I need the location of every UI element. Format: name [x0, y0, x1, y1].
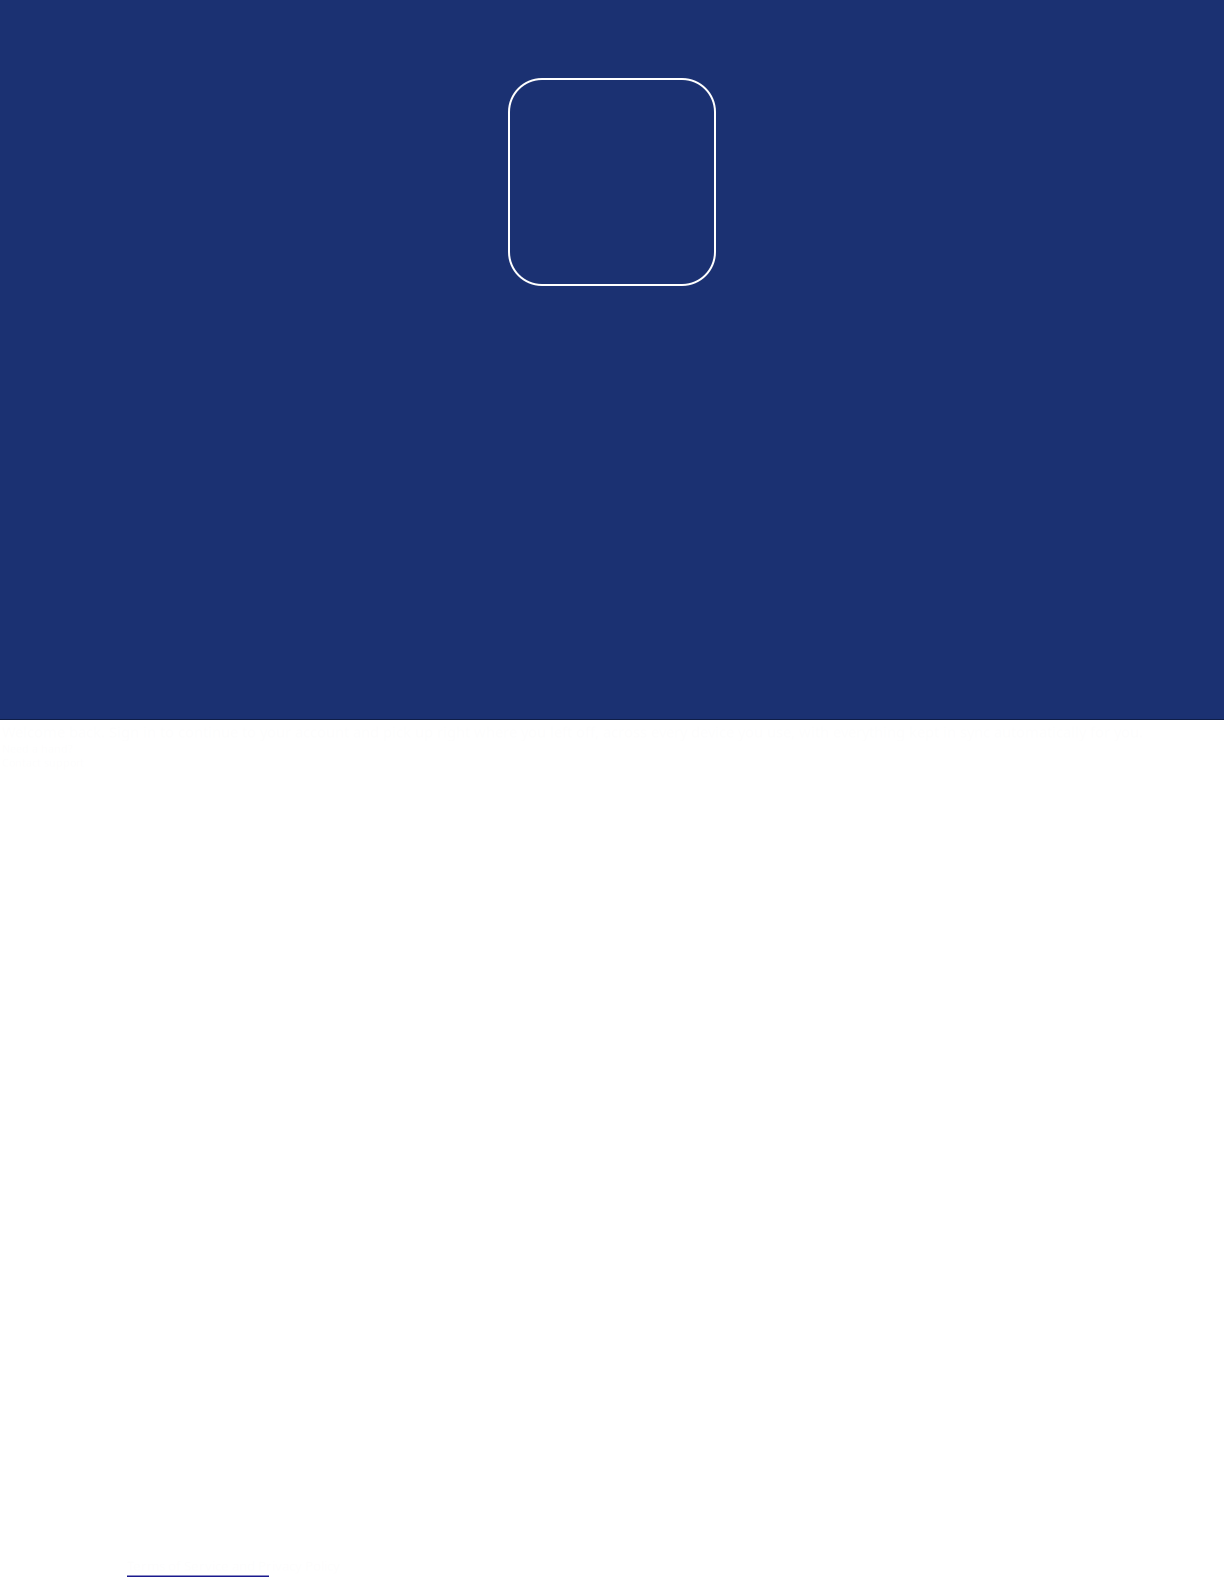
button[interactable]: Terms of Service and Privacy Policy — [127, 1557, 340, 1577]
